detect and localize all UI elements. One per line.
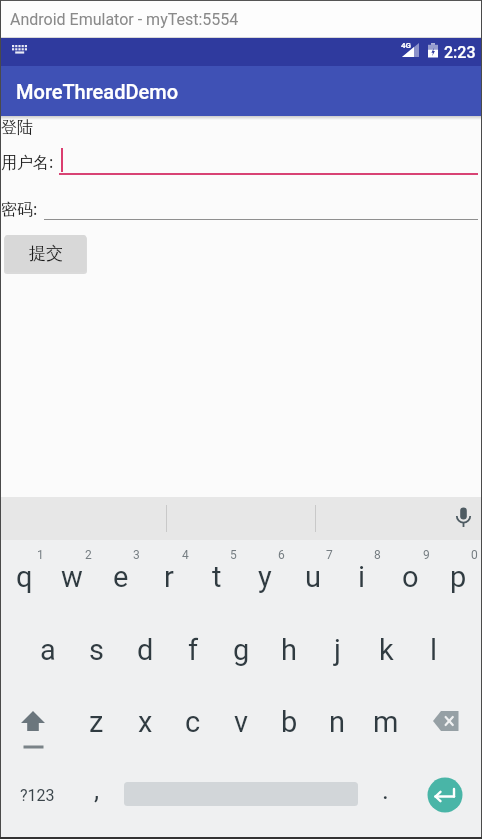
button[interactable]: y [241, 551, 289, 603]
staticText: 6 [278, 548, 285, 562]
staticText: 5 [230, 548, 237, 562]
button[interactable] [424, 698, 472, 746]
staticText: 用户名: [1, 151, 54, 173]
staticText: c [185, 705, 201, 739]
button[interactable]: g [217, 624, 265, 676]
button[interactable]: u [289, 551, 337, 603]
staticText: . [382, 775, 389, 805]
staticText: 8 [374, 548, 381, 562]
staticText: a [40, 633, 56, 667]
staticText: 1 [37, 548, 44, 562]
button[interactable]: m [362, 696, 410, 748]
staticText: d [137, 633, 154, 667]
staticText: n [329, 705, 346, 739]
button[interactable]: e [97, 551, 145, 603]
staticText: 提交 [29, 243, 63, 264]
button[interactable]: f [169, 624, 217, 676]
staticText: t [212, 560, 222, 594]
staticText: ?123 [20, 786, 55, 805]
staticText: f [188, 633, 199, 667]
staticText: Android Emulator - myTest:5554 [10, 10, 239, 29]
button[interactable]: q [0, 551, 48, 603]
button[interactable]: p [434, 551, 482, 603]
staticText: MoreThreadDemo [16, 80, 179, 103]
staticText: y [258, 560, 272, 594]
button[interactable]: o [386, 551, 434, 603]
staticText: 2:23 [444, 43, 476, 62]
staticText: 7 [326, 548, 333, 562]
button[interactable]: i [338, 551, 386, 603]
staticText: z [89, 705, 104, 739]
staticText: s [89, 633, 104, 667]
button[interactable]: x [121, 696, 169, 748]
button[interactable]: l [410, 624, 458, 676]
button[interactable]: k [362, 624, 410, 676]
button[interactable]: h [265, 624, 313, 676]
button[interactable]: j [313, 624, 361, 676]
button[interactable]: v [217, 696, 265, 748]
button[interactable]: n [313, 696, 361, 748]
staticText: k [379, 633, 394, 667]
button[interactable]: d [121, 624, 169, 676]
staticText: l [430, 633, 438, 667]
staticText: v [234, 705, 249, 739]
staticText: u [305, 560, 321, 594]
staticText: m [373, 705, 399, 739]
staticText: 密码: [1, 198, 38, 220]
staticText: , [94, 775, 100, 805]
button[interactable]: s [72, 624, 120, 676]
staticText: r [164, 560, 174, 594]
staticText: j [334, 633, 341, 667]
button[interactable] [448, 502, 478, 536]
staticText: 2 [85, 548, 92, 562]
staticText: 4 [182, 548, 189, 562]
button[interactable]: w [48, 551, 96, 603]
button[interactable] [427, 777, 463, 813]
staticText: e [113, 560, 129, 594]
button[interactable]: . [370, 773, 400, 807]
staticText: x [138, 705, 153, 739]
button[interactable]: z [72, 696, 120, 748]
staticText: 9 [423, 548, 430, 562]
button[interactable]: a [24, 624, 72, 676]
button[interactable]: r [145, 551, 193, 603]
button[interactable]: t [193, 551, 241, 603]
button[interactable]: , [82, 773, 112, 807]
button[interactable]: c [169, 696, 217, 748]
staticText: 3 [133, 548, 140, 562]
staticText: h [281, 633, 297, 667]
staticText: o [402, 560, 419, 594]
staticText: p [450, 560, 467, 594]
staticText: q [16, 560, 33, 594]
staticText: g [233, 633, 250, 667]
staticText: i [358, 560, 366, 594]
button[interactable]: 提交 [5, 235, 86, 272]
staticText: 登陆 [1, 118, 33, 138]
button[interactable] [12, 700, 56, 750]
button[interactable]: b [265, 696, 313, 748]
staticText: 4G [401, 41, 412, 50]
staticText: b [281, 705, 298, 739]
staticText: w [61, 560, 83, 594]
button[interactable]: ?123 [10, 780, 64, 810]
staticText: 0 [471, 548, 478, 562]
